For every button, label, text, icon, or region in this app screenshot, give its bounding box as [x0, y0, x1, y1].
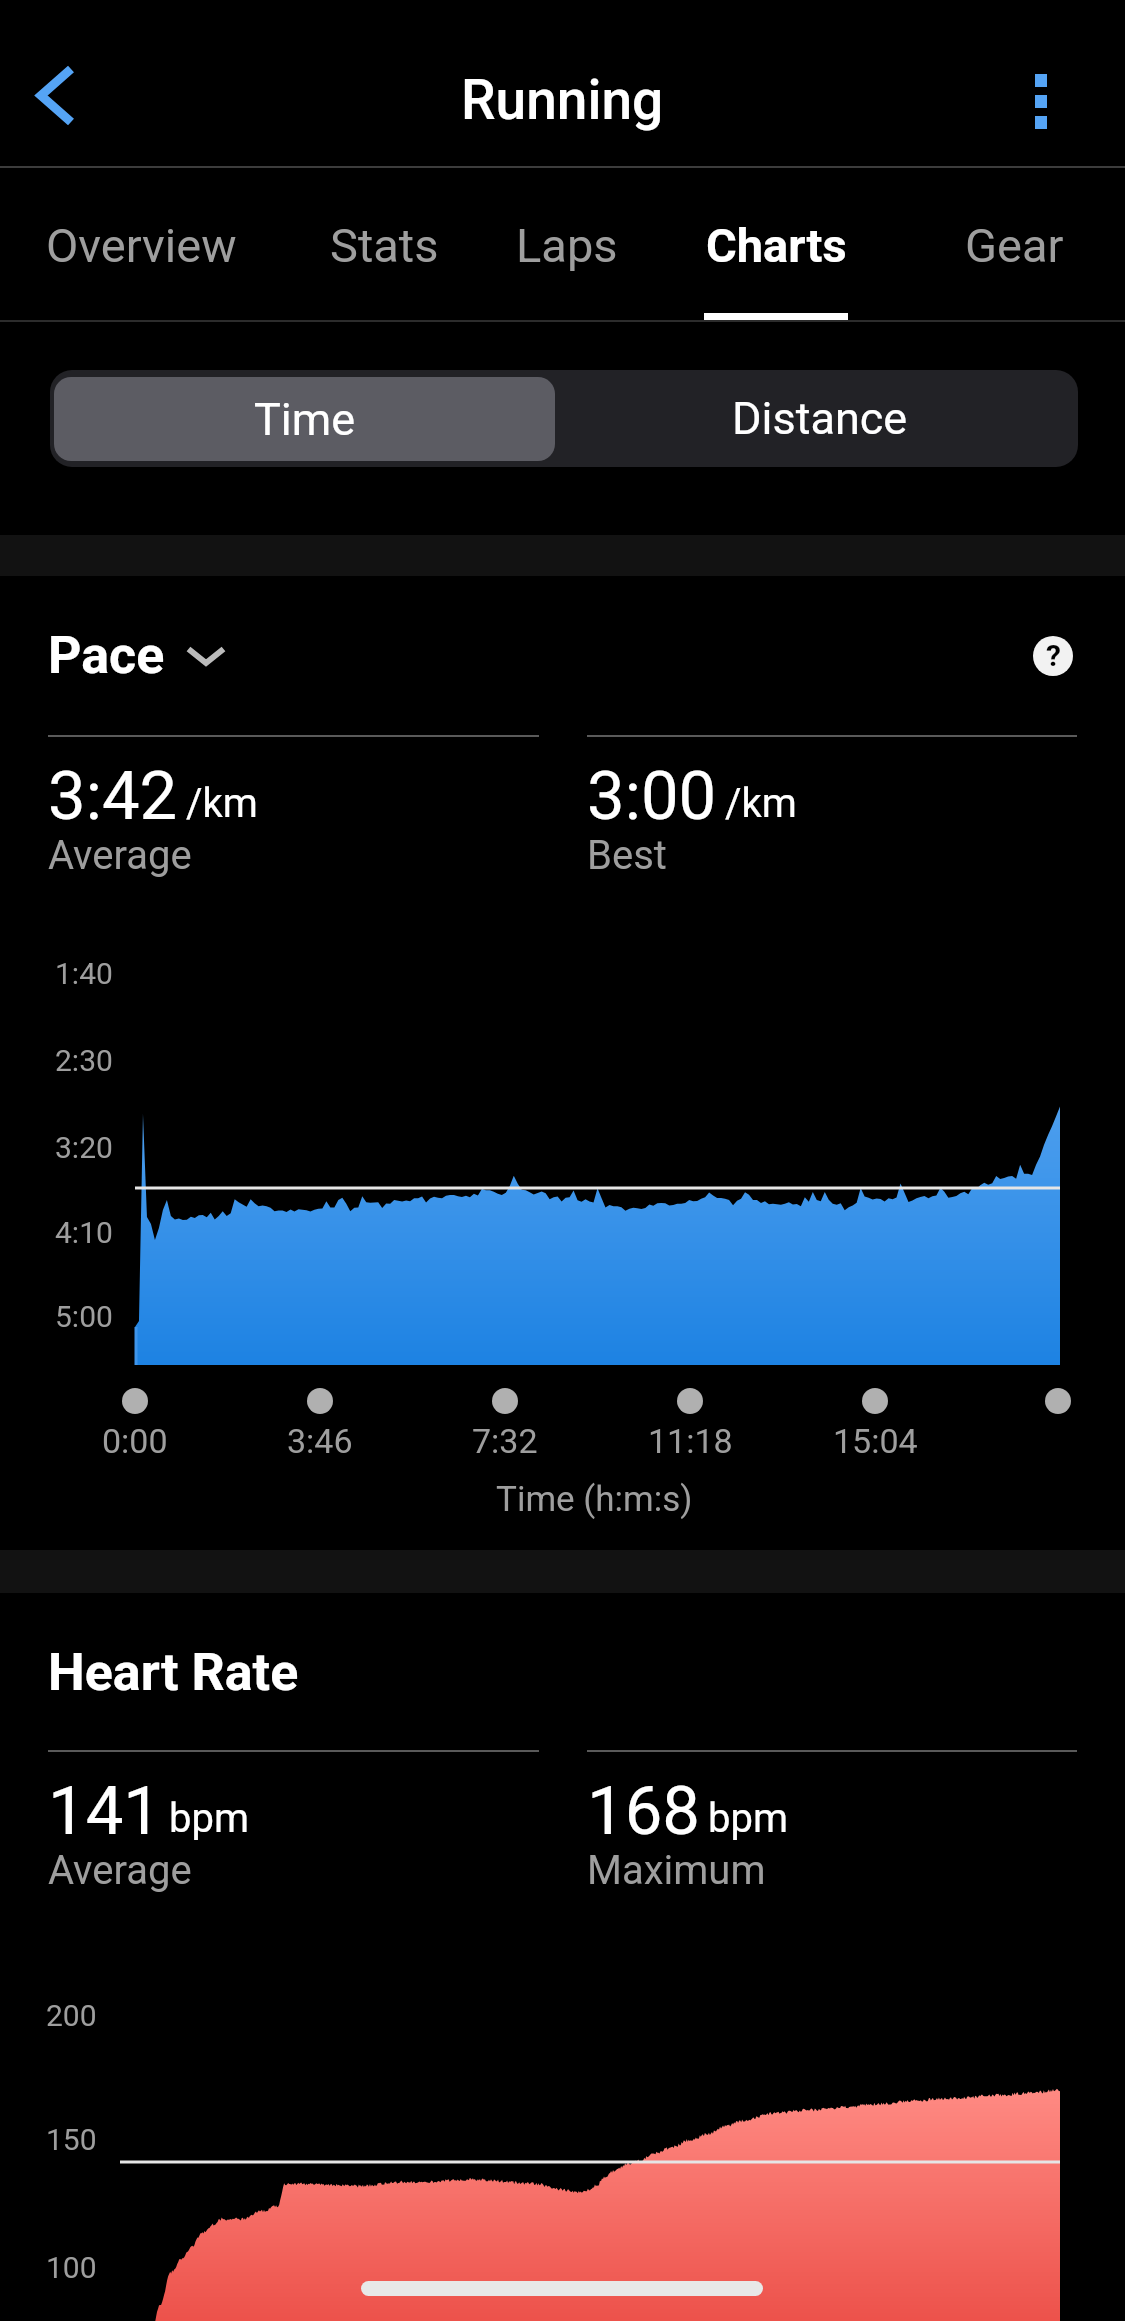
button[interactable]: Overview — [36, 168, 246, 320]
button[interactable]: Gear — [909, 168, 1119, 320]
staticText: Distance — [732, 392, 908, 445]
button[interactable]: Laps — [462, 168, 672, 320]
staticText: 200 — [46, 1998, 97, 2033]
staticText: Maximum — [587, 1847, 766, 1894]
staticText: 11:18 — [648, 1421, 733, 1461]
staticText: 3:46 — [287, 1421, 353, 1461]
staticText: 150 — [46, 2122, 97, 2157]
staticText: Pace — [48, 625, 165, 686]
staticText: Time — [254, 393, 356, 446]
staticText: bpm — [708, 1795, 788, 1842]
staticText: Stats — [330, 218, 439, 273]
staticText: 141 — [48, 1772, 161, 1851]
button[interactable]: Time — [54, 377, 555, 461]
staticText: 4:10 — [55, 1215, 113, 1250]
staticText: 15:04 — [833, 1421, 918, 1461]
staticText: Gear — [965, 218, 1064, 273]
button[interactable]: Pace — [48, 625, 227, 686]
staticText: 0:00 — [102, 1421, 168, 1461]
staticText: Time (h:m:s) — [496, 1479, 693, 1520]
staticText: 100 — [46, 2250, 97, 2285]
staticText: Charts — [706, 218, 847, 273]
staticText: 3:20 — [55, 1130, 113, 1165]
button[interactable]: More options — [999, 59, 1083, 143]
staticText: 1:40 — [55, 956, 113, 991]
button[interactable]: Stats — [279, 168, 489, 320]
staticText: Laps — [516, 218, 618, 273]
staticText: 2:30 — [55, 1043, 113, 1078]
staticText: /km — [725, 780, 797, 827]
staticText: Average — [48, 1847, 192, 1894]
button[interactable]: Distance — [562, 370, 1078, 467]
button[interactable]: Charts — [671, 168, 881, 320]
button[interactable]: Help — [1033, 636, 1073, 676]
staticText: Heart Rate — [48, 1642, 299, 1703]
staticText: 5:00 — [55, 1299, 113, 1334]
staticText: 3:42 — [48, 757, 178, 836]
staticText: ? — [1046, 638, 1061, 673]
staticText: 3:00 — [587, 757, 717, 836]
staticText: /km — [186, 780, 258, 827]
button[interactable]: Back — [14, 53, 98, 137]
staticText: Average — [48, 832, 192, 879]
staticText: 168 — [587, 1772, 700, 1851]
staticText: Running — [461, 68, 664, 132]
staticText: 7:32 — [472, 1421, 538, 1461]
staticText: Overview — [46, 218, 237, 273]
staticText: Best — [587, 832, 667, 879]
staticText: bpm — [169, 1795, 249, 1842]
